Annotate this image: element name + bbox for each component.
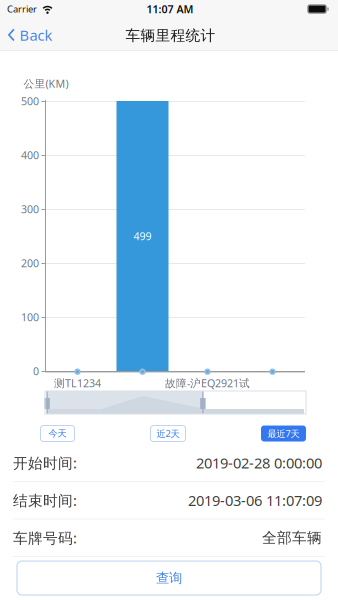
staticText: 故障-沪EQ2921试	[165, 376, 250, 390]
staticText: 2019-02-28 0:00:00	[196, 453, 322, 472]
staticText: 结束时间:	[13, 490, 77, 510]
staticText: 100	[21, 310, 39, 324]
button[interactable]: 最近7天	[261, 425, 306, 441]
staticText: 499	[133, 229, 151, 243]
button[interactable]: 近2天	[150, 425, 185, 441]
button[interactable]: 车牌号码:	[0, 519, 338, 556]
staticText: 2019-03-06 11:07:09	[188, 490, 322, 510]
staticText: 11:07 AM	[146, 2, 193, 16]
staticText: 车牌号码:	[13, 528, 77, 547]
staticText: 车辆里程统计	[125, 26, 215, 44]
staticText: 0	[33, 364, 39, 378]
button[interactable]: 结束时间:	[0, 482, 338, 518]
button[interactable]: 今天	[40, 425, 74, 441]
button[interactable]: 查询	[17, 561, 321, 595]
staticText: 全部车辆	[262, 529, 322, 547]
staticText: 测TL1234	[54, 376, 101, 390]
staticText: Carrier	[7, 3, 37, 15]
button[interactable]: 开始时间:	[0, 444, 338, 481]
staticText: 近2天	[156, 427, 179, 440]
staticText: 查询	[156, 570, 182, 586]
staticText: 500	[21, 94, 39, 108]
staticText: 300	[21, 202, 39, 216]
staticText: 今天	[48, 428, 66, 439]
staticText: 400	[21, 148, 39, 162]
staticText: Back	[19, 25, 52, 45]
button[interactable]: Back	[0, 17, 60, 53]
staticText: 200	[21, 256, 39, 270]
staticText: 公里(KM)	[23, 76, 68, 91]
staticText: 最近7天	[267, 427, 299, 440]
staticText: 开始时间:	[13, 453, 77, 472]
